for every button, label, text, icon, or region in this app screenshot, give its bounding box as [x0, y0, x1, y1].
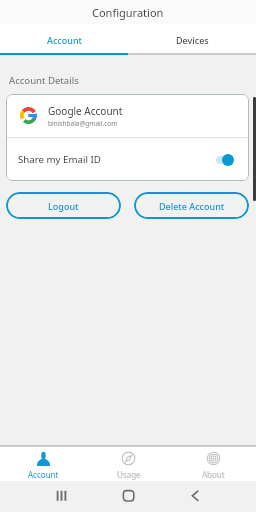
button[interactable]: About	[171, 447, 256, 480]
button[interactable]: Share my Email ID toggle	[216, 153, 235, 166]
staticText: Share my Email ID	[18, 153, 101, 166]
staticText: Google Account	[48, 104, 123, 118]
staticText: Account	[28, 469, 59, 480]
button[interactable]: Delete Account	[134, 192, 249, 219]
button[interactable]: Devices	[128, 24, 256, 55]
button[interactable]: Share my Email ID	[6, 138, 249, 181]
button[interactable]: Google Account	[6, 94, 249, 137]
staticText: binishbala@gmail.com	[48, 119, 118, 128]
button[interactable]: Account	[0, 447, 86, 480]
button[interactable]: Logout	[6, 192, 121, 219]
button[interactable]: Account	[0, 24, 128, 55]
button[interactable]: Usage	[86, 447, 171, 480]
staticText: About	[202, 469, 225, 480]
staticText: Account Details	[9, 74, 79, 87]
staticText: Devices	[176, 34, 209, 46]
staticText: Delete Account	[159, 200, 225, 212]
staticText: Usage	[117, 469, 141, 480]
staticText: Logout	[48, 200, 79, 212]
staticText: Configuration	[92, 5, 164, 20]
staticText: Account	[47, 34, 82, 46]
